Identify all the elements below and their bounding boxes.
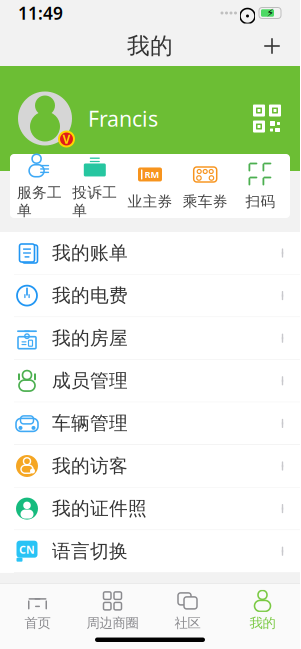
staticText: 我的证件照 (52, 497, 147, 520)
staticText: V (62, 131, 70, 147)
button[interactable]: 首页 (0, 584, 75, 631)
staticText: 社区 (174, 615, 200, 631)
staticText: RM (144, 168, 159, 181)
staticText: 投诉工单 (72, 183, 117, 219)
button[interactable]: 社区 (150, 584, 225, 631)
staticText: ⚡︎ (266, 7, 273, 19)
button[interactable]: 扫码 (233, 151, 288, 220)
staticText: 我的访客 (52, 454, 128, 477)
staticText: 业主券 (127, 192, 172, 210)
staticText: 我的房屋 (52, 327, 128, 350)
button[interactable]: RM (122, 151, 178, 220)
staticText: 周边商圈 (86, 615, 138, 631)
button[interactable]: 我的证件照 (0, 488, 300, 530)
staticText: 服务工单 (17, 183, 62, 219)
staticText: 乘车券 (183, 192, 228, 210)
staticText: 语言切换 (52, 540, 128, 563)
button[interactable]: 我的房屋 (0, 317, 300, 360)
staticText: CN (19, 543, 35, 557)
button[interactable]: 乘车券 (178, 151, 233, 220)
button[interactable]: CN (0, 530, 300, 573)
button[interactable]: 服务工单 (12, 142, 67, 229)
staticText: 我的 (249, 615, 275, 631)
staticText: Francis (88, 104, 158, 133)
button[interactable]: Scan QR code (250, 101, 284, 135)
button[interactable]: 投诉工单 (67, 142, 122, 229)
staticText: 我的电费 (52, 284, 128, 307)
button[interactable]: 我的电费 (0, 275, 300, 317)
button[interactable]: 车辆管理 (0, 402, 300, 445)
button[interactable]: 我的账单 (0, 232, 300, 275)
staticText: 车辆管理 (52, 412, 128, 435)
staticText: 11:49 (18, 1, 63, 24)
button[interactable]: 成员管理 (0, 360, 300, 402)
button[interactable]: 我的 (225, 584, 300, 631)
staticText: 我的账单 (52, 241, 128, 264)
staticText: 我的 (127, 32, 173, 60)
staticText: 首页 (24, 615, 50, 631)
button[interactable]: Add (252, 28, 292, 64)
staticText: 成员管理 (52, 369, 128, 392)
button[interactable]: 我的访客 (0, 445, 300, 488)
staticText: 扫码 (245, 192, 275, 210)
button[interactable]: 周边商圈 (75, 584, 150, 631)
